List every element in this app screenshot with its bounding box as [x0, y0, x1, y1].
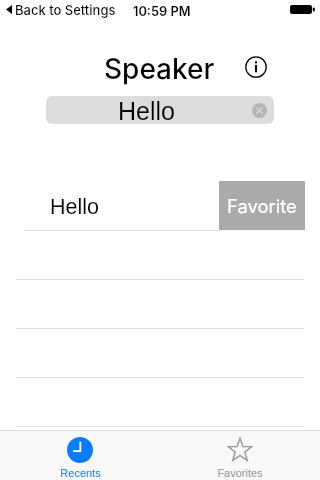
staticText: Recents	[60, 467, 101, 479]
button[interactable]: Hello	[46, 96, 274, 124]
staticText: Favorites	[217, 467, 263, 479]
staticText: Favorite	[227, 195, 297, 217]
button[interactable]: Favorite	[219, 181, 305, 230]
button[interactable]: Recents	[25, 431, 135, 480]
staticText: 10:59 PM	[133, 4, 191, 19]
staticText: Hello	[50, 195, 99, 219]
button[interactable]: Clear text	[252, 103, 267, 118]
button[interactable]: Hello	[0, 181, 320, 230]
staticText: Speaker	[104, 52, 215, 86]
button[interactable]: Back to Settings	[6, 2, 116, 18]
button[interactable]: Favorites	[185, 431, 295, 480]
staticText: Back to Settings	[15, 2, 116, 18]
button[interactable]: Info	[245, 56, 267, 78]
staticText: Hello	[118, 97, 175, 124]
